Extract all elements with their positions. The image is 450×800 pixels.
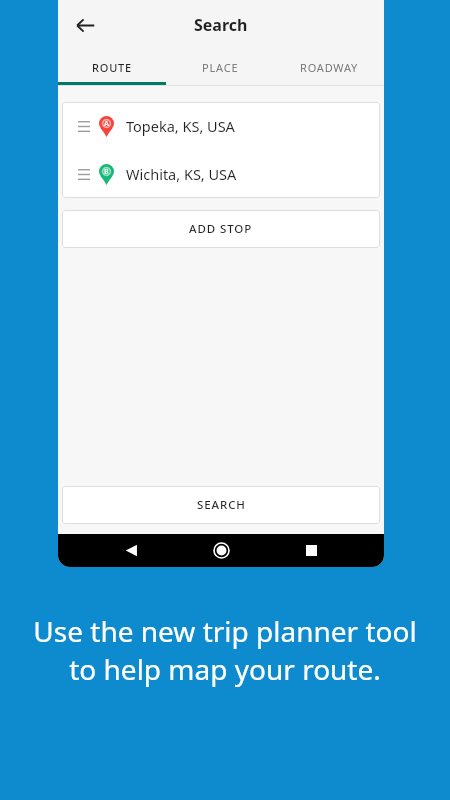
button[interactable]: ADD STOP [62, 210, 380, 248]
staticText: ROUTE [92, 60, 133, 75]
staticText: Topeka, KS, USA [126, 116, 235, 136]
button[interactable]: SEARCH [62, 486, 380, 524]
button[interactable]: PLACE [166, 50, 275, 85]
button[interactable]: Back [114, 534, 148, 567]
staticText: Wichita, KS, USA [126, 164, 237, 184]
button[interactable]: Back [64, 4, 106, 46]
staticText: ROADWAY [300, 60, 359, 75]
staticText: SEARCH [197, 497, 246, 513]
button[interactable]: ROADWAY [275, 50, 384, 85]
staticText: B [104, 167, 109, 177]
button[interactable]: B [62, 150, 380, 198]
button[interactable]: Home [204, 534, 238, 567]
staticText: Use the new trip planner tool to help ma… [22, 612, 428, 688]
button[interactable]: Recents [294, 534, 328, 567]
button[interactable]: A [62, 102, 380, 150]
staticText: A [104, 119, 109, 129]
staticText: PLACE [202, 60, 239, 75]
button[interactable]: ROUTE [58, 50, 166, 85]
staticText: Search [194, 14, 248, 36]
staticText: ADD STOP [189, 221, 253, 237]
